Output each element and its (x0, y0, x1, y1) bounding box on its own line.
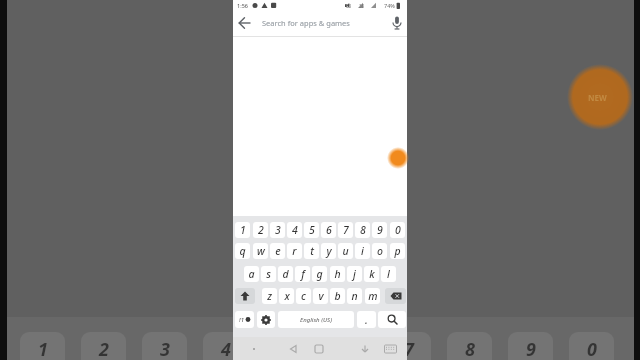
staticText: s (266, 267, 271, 281)
staticText: v (318, 289, 324, 303)
staticText: 9 (526, 337, 536, 360)
staticText: z (267, 289, 272, 303)
staticText: 74% (384, 2, 395, 9)
button[interactable] (384, 344, 397, 354)
button[interactable] (313, 343, 325, 355)
button[interactable]: p (390, 243, 405, 259)
staticText: f (301, 267, 305, 281)
staticText: 8 (360, 223, 366, 237)
button[interactable]: u (338, 243, 353, 259)
staticText: 1:56 (237, 2, 248, 9)
staticText: 38 (359, 3, 365, 9)
button[interactable]: l (381, 266, 396, 282)
staticText: NEW (588, 92, 607, 103)
button[interactable]: e (270, 243, 285, 259)
button[interactable]: English (US) (278, 311, 354, 328)
staticText: 2 (258, 223, 264, 237)
staticText: 2 (99, 337, 109, 360)
staticText: 9 (377, 223, 383, 237)
staticText: y (326, 244, 332, 258)
button[interactable]: x (279, 288, 294, 304)
staticText: d (282, 267, 289, 281)
button[interactable]: z (262, 288, 277, 304)
staticText: 6 (326, 223, 332, 237)
staticText: 8 (465, 337, 475, 360)
staticText: j (353, 267, 356, 281)
button[interactable] (385, 288, 406, 304)
button[interactable]: 6 (321, 222, 336, 238)
staticText: . (365, 313, 368, 327)
button[interactable]: 4 (287, 222, 302, 238)
button[interactable]: c (296, 288, 311, 304)
button[interactable]: o (372, 243, 387, 259)
button[interactable]: n (347, 288, 362, 304)
button[interactable]: 5 (304, 222, 319, 238)
staticText: 3 (160, 337, 170, 360)
staticText: !1 (239, 316, 244, 324)
staticText: k (369, 267, 375, 281)
button[interactable]: . (357, 311, 376, 328)
button[interactable] (378, 311, 406, 328)
button[interactable]: j (347, 266, 362, 282)
staticText: h (334, 267, 341, 281)
staticText: 4 (221, 337, 231, 360)
button[interactable] (235, 288, 255, 304)
button[interactable]: t (304, 243, 319, 259)
staticText: w (257, 244, 265, 258)
staticText: 3 (275, 223, 281, 237)
button[interactable]: k (364, 266, 379, 282)
button[interactable]: y (321, 243, 336, 259)
staticText: b (334, 289, 341, 303)
button[interactable]: !1 (235, 311, 254, 328)
staticText: p (394, 244, 401, 258)
button[interactable]: w (253, 243, 268, 259)
button[interactable]: d (278, 266, 293, 282)
button[interactable] (388, 13, 406, 33)
staticText: Search for apps & games (262, 18, 350, 28)
button[interactable] (235, 13, 255, 33)
button[interactable]: 2 (253, 222, 268, 238)
button[interactable]: g (312, 266, 327, 282)
button[interactable]: v (313, 288, 328, 304)
button[interactable]: 7 (338, 222, 353, 238)
staticText: m (368, 289, 378, 303)
staticText: 5 (309, 223, 315, 237)
staticText: 0 (395, 223, 401, 237)
button[interactable]: 1 (235, 222, 250, 238)
button[interactable]: m (365, 288, 380, 304)
button[interactable] (257, 311, 275, 328)
staticText: 7 (404, 337, 414, 360)
staticText: r (292, 244, 297, 258)
staticText: e (275, 244, 281, 258)
button[interactable]: r (287, 243, 302, 259)
button[interactable]: i (355, 243, 370, 259)
button[interactable]: a (244, 266, 259, 282)
button[interactable]: h (330, 266, 345, 282)
button[interactable]: s (261, 266, 276, 282)
button[interactable] (359, 343, 371, 355)
staticText: 0 (587, 337, 597, 360)
staticText: 1 (240, 223, 246, 237)
button[interactable]: 0 (390, 222, 405, 238)
staticText: n (351, 289, 358, 303)
staticText: x (284, 289, 290, 303)
staticText: a (248, 267, 255, 281)
staticText: 38 (346, 3, 352, 9)
staticText: u (342, 244, 349, 258)
staticText: l (387, 267, 390, 281)
button[interactable]: 9 (372, 222, 387, 238)
staticText: English (US) (300, 316, 332, 324)
button[interactable] (287, 343, 301, 355)
staticText: 5 (282, 337, 292, 360)
button[interactable]: b (330, 288, 345, 304)
staticText: t (310, 244, 314, 258)
button[interactable]: f (295, 266, 310, 282)
button[interactable]: 8 (355, 222, 370, 238)
staticText: g (316, 267, 323, 281)
staticText: i (361, 244, 364, 258)
button[interactable]: q (235, 243, 250, 259)
staticText: 1 (38, 337, 48, 360)
staticText: q (239, 244, 246, 258)
button[interactable]: 3 (270, 222, 285, 238)
